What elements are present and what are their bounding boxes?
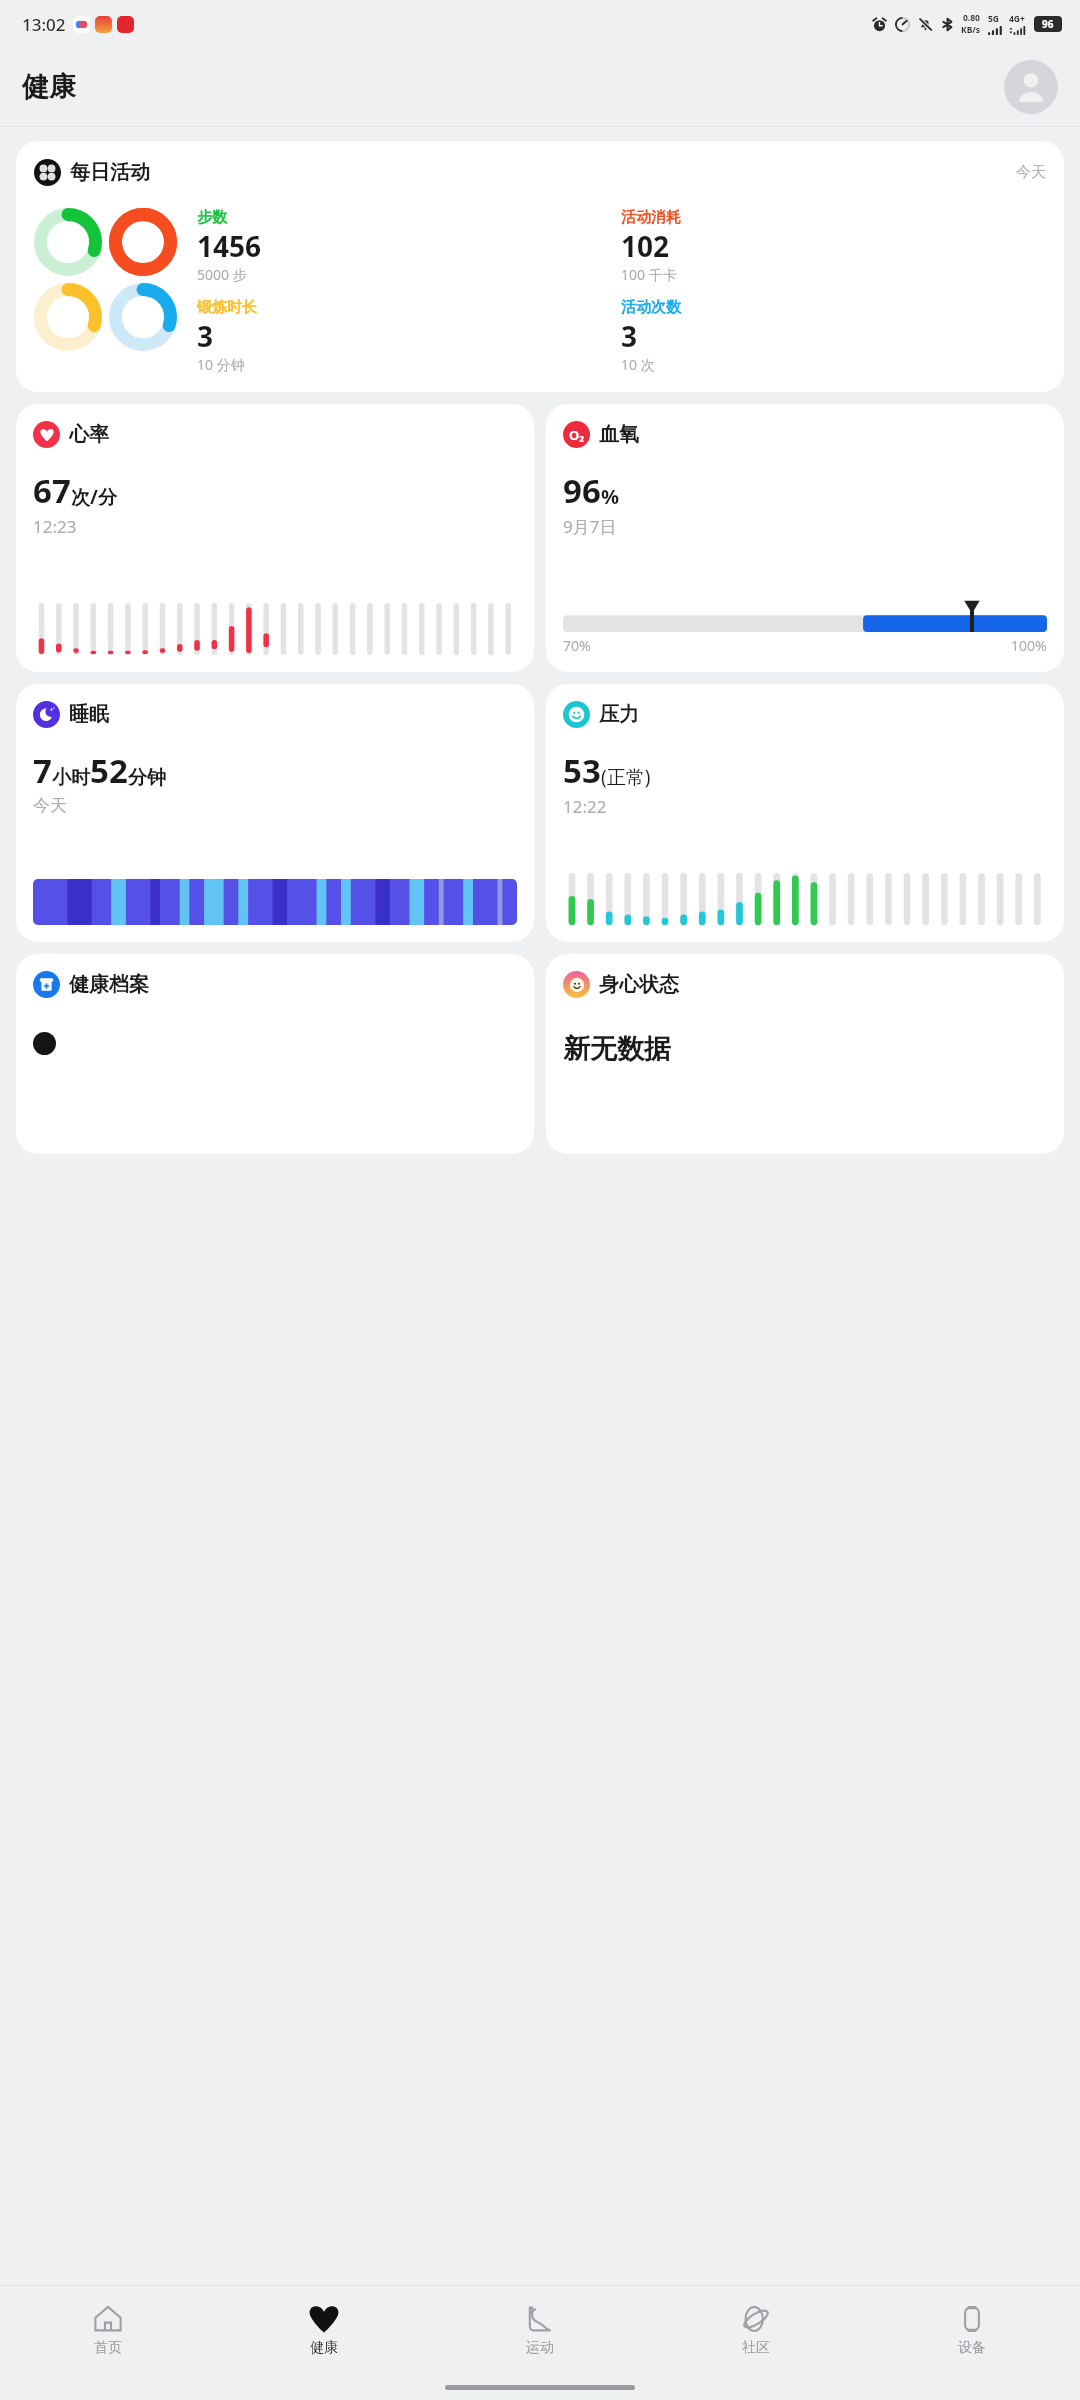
button[interactable]: O₂ bbox=[546, 404, 1064, 672]
staticText: 心率 bbox=[69, 422, 109, 447]
staticText: 70% bbox=[563, 636, 591, 655]
staticText: 53 bbox=[563, 748, 601, 793]
staticText: 5000 步 bbox=[197, 265, 247, 284]
staticText: 96 bbox=[563, 468, 601, 513]
button[interactable]: 个人中心 bbox=[1004, 60, 1058, 114]
staticText: 锻炼时长 bbox=[197, 298, 257, 317]
button[interactable]: 身心状态 bbox=[546, 954, 1064, 1154]
staticText: 次/分 bbox=[71, 484, 117, 510]
staticText: 7 bbox=[33, 748, 52, 793]
staticText: 3 bbox=[621, 317, 638, 355]
staticText: 社区 bbox=[742, 2339, 770, 2357]
staticText: 96 bbox=[1042, 17, 1054, 31]
staticText: 首页 bbox=[94, 2339, 122, 2357]
staticText: 67 bbox=[33, 468, 71, 513]
staticText: 5G bbox=[988, 13, 1000, 25]
staticText: 血氧 bbox=[599, 422, 639, 447]
staticText: 健康 bbox=[310, 2339, 338, 2357]
staticText: 步数 bbox=[197, 208, 227, 227]
staticText: 小时 bbox=[52, 766, 90, 790]
staticText: O₂ bbox=[569, 426, 585, 444]
button[interactable]: 设备 bbox=[864, 2286, 1080, 2374]
staticText: 每日活动 bbox=[70, 160, 150, 185]
button[interactable]: 压力 bbox=[546, 684, 1064, 942]
staticText: 12:22 bbox=[563, 795, 607, 818]
staticText: 0.80 bbox=[963, 12, 980, 24]
staticText: 活动次数 bbox=[621, 298, 681, 317]
staticText: 52 bbox=[90, 748, 128, 793]
staticText: 活动消耗 bbox=[621, 208, 681, 227]
staticText: 健康档案 bbox=[69, 972, 149, 997]
staticText: 压力 bbox=[599, 702, 639, 727]
button[interactable]: 运动 bbox=[432, 2286, 648, 2374]
staticText: 今天 bbox=[1016, 163, 1046, 182]
staticText: 100% bbox=[1011, 636, 1047, 655]
staticText: 13:02 bbox=[22, 13, 66, 36]
staticText: 身心状态 bbox=[599, 972, 679, 997]
staticText: 10 分钟 bbox=[197, 355, 245, 374]
staticText: 健康 bbox=[22, 70, 76, 104]
staticText: 4G+ bbox=[1009, 13, 1025, 25]
staticText: 10 次 bbox=[621, 355, 655, 374]
staticText: 睡眠 bbox=[69, 702, 109, 727]
staticText: 12:23 bbox=[33, 515, 77, 538]
staticText: 102 bbox=[621, 227, 670, 265]
button[interactable]: 社区 bbox=[648, 2286, 864, 2374]
staticText: 9月7日 bbox=[563, 515, 617, 538]
staticText: 运动 bbox=[526, 2339, 554, 2357]
staticText: 100 千卡 bbox=[621, 265, 677, 284]
button[interactable]: 睡眠 bbox=[16, 684, 534, 942]
staticText: 设备 bbox=[958, 2339, 986, 2357]
staticText: 今天 bbox=[33, 795, 67, 816]
staticText: 分钟 bbox=[128, 766, 166, 790]
staticText: % bbox=[601, 483, 620, 510]
button[interactable]: 健康 bbox=[216, 2286, 432, 2374]
staticText: 新无数据 bbox=[563, 1032, 671, 1066]
staticText: KB/s bbox=[961, 24, 981, 36]
staticText: 1456 bbox=[197, 227, 262, 265]
staticText: (正常) bbox=[601, 764, 651, 790]
button[interactable]: 首页 bbox=[0, 2286, 216, 2374]
staticText: 3 bbox=[197, 317, 214, 355]
button[interactable]: 心率 bbox=[16, 404, 534, 672]
button[interactable]: 每日活动 bbox=[16, 141, 1064, 392]
button[interactable]: 健康档案 bbox=[16, 954, 534, 1154]
